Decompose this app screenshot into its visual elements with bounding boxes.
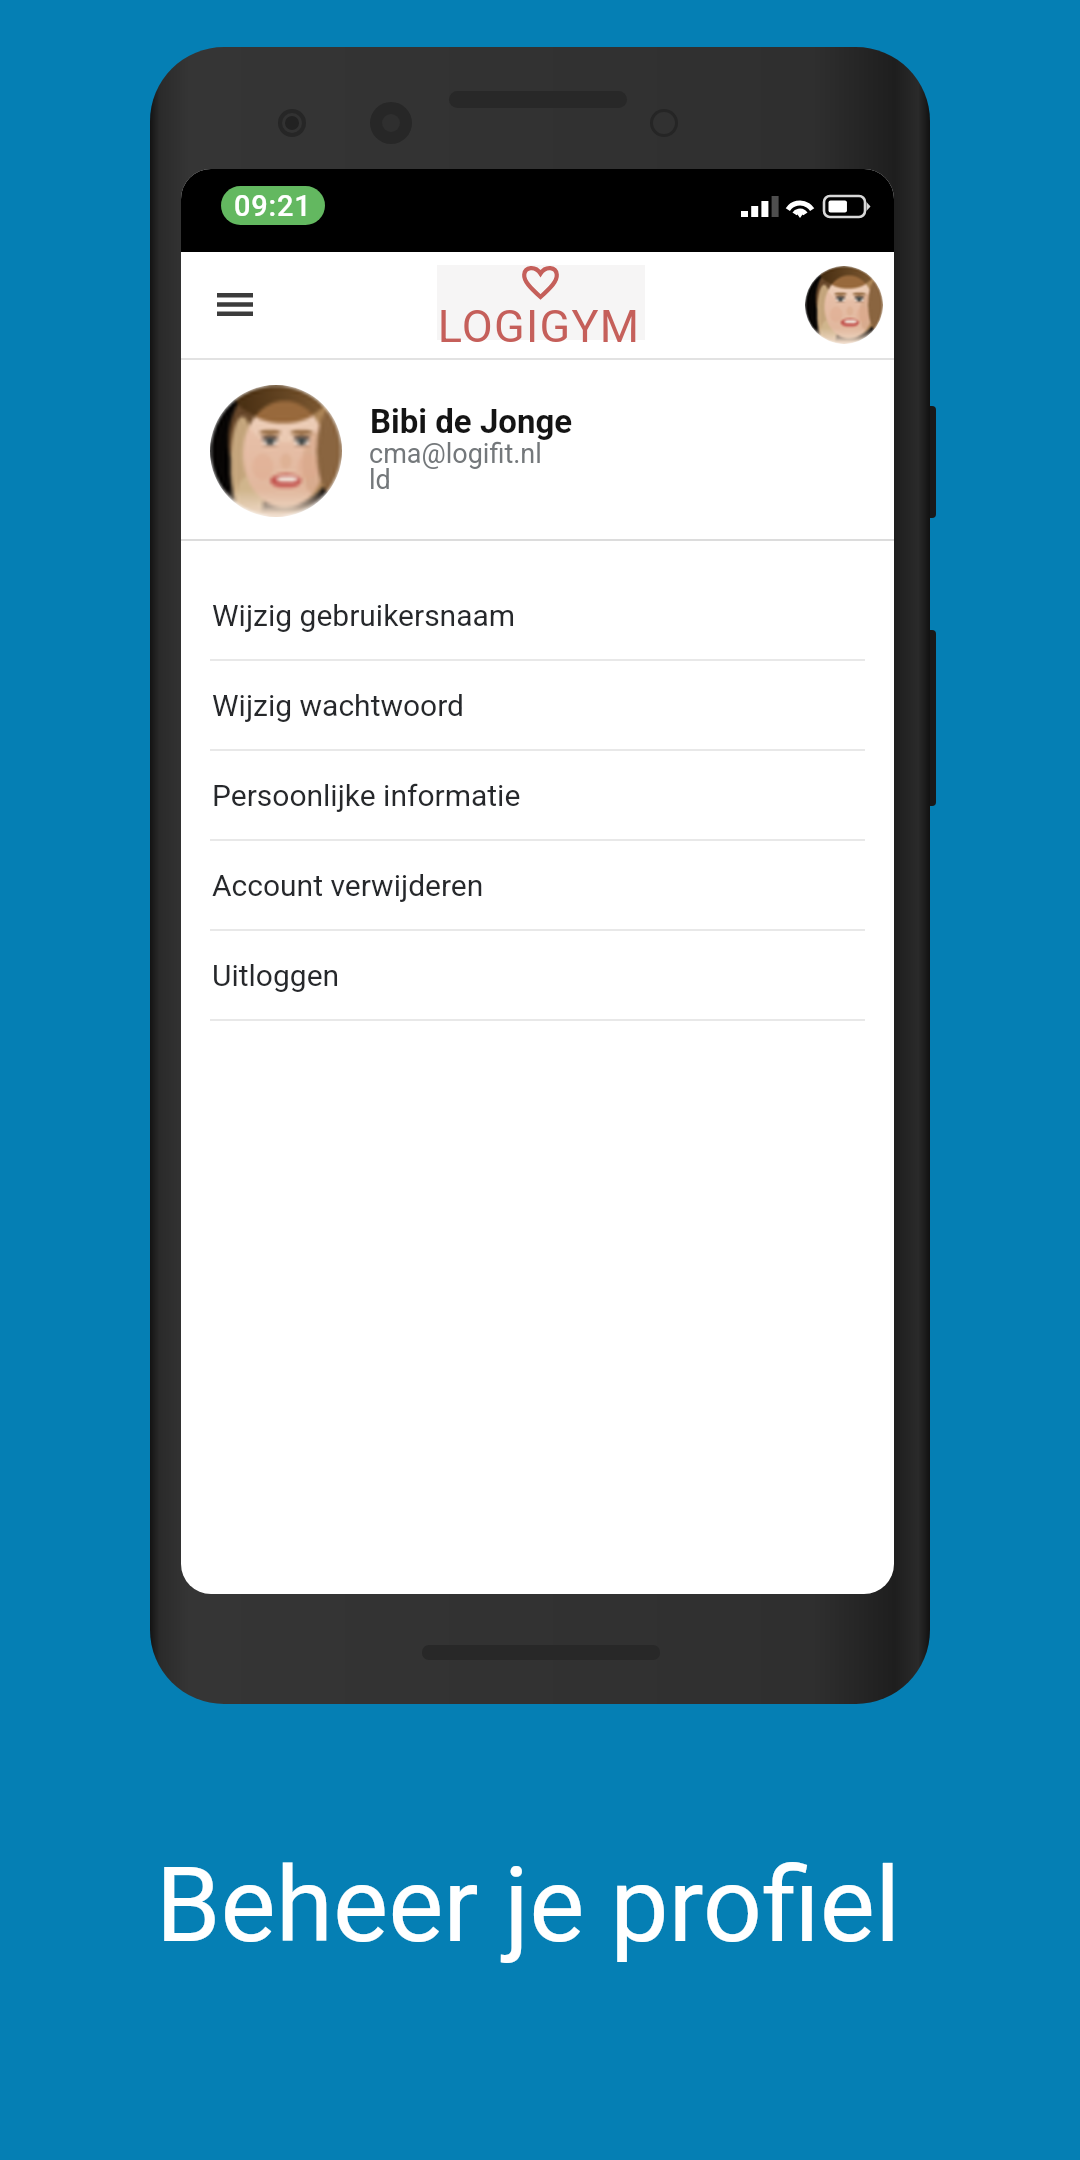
button[interactable]: Uitloggen xyxy=(181,931,894,1021)
button[interactable]: Bibi de Jonge xyxy=(181,360,894,539)
staticText: Uitloggen xyxy=(212,958,340,993)
button[interactable]: Menu xyxy=(199,268,271,340)
button[interactable]: Wijzig gebruikersnaam xyxy=(181,571,894,661)
button[interactable]: Profile xyxy=(805,266,883,344)
staticText: cma@logifit.nl xyxy=(369,438,542,470)
staticText: 09:21 xyxy=(234,189,312,223)
button[interactable]: Account verwijderen xyxy=(181,841,894,931)
staticText: Account verwijderen xyxy=(212,868,484,903)
staticText: ld xyxy=(369,464,391,496)
staticText: Wijzig wachtwoord xyxy=(212,688,465,723)
staticText: Bibi de Jonge xyxy=(370,402,573,441)
button[interactable]: Wijzig wachtwoord xyxy=(181,661,894,751)
staticText: LOGIGYM xyxy=(435,300,643,353)
staticText: Beheer je profiel xyxy=(0,1845,1068,1967)
button[interactable]: Persoonlijke informatie xyxy=(181,751,894,841)
staticText: Persoonlijke informatie xyxy=(212,778,521,813)
staticText: Wijzig gebruikersnaam xyxy=(212,598,516,633)
